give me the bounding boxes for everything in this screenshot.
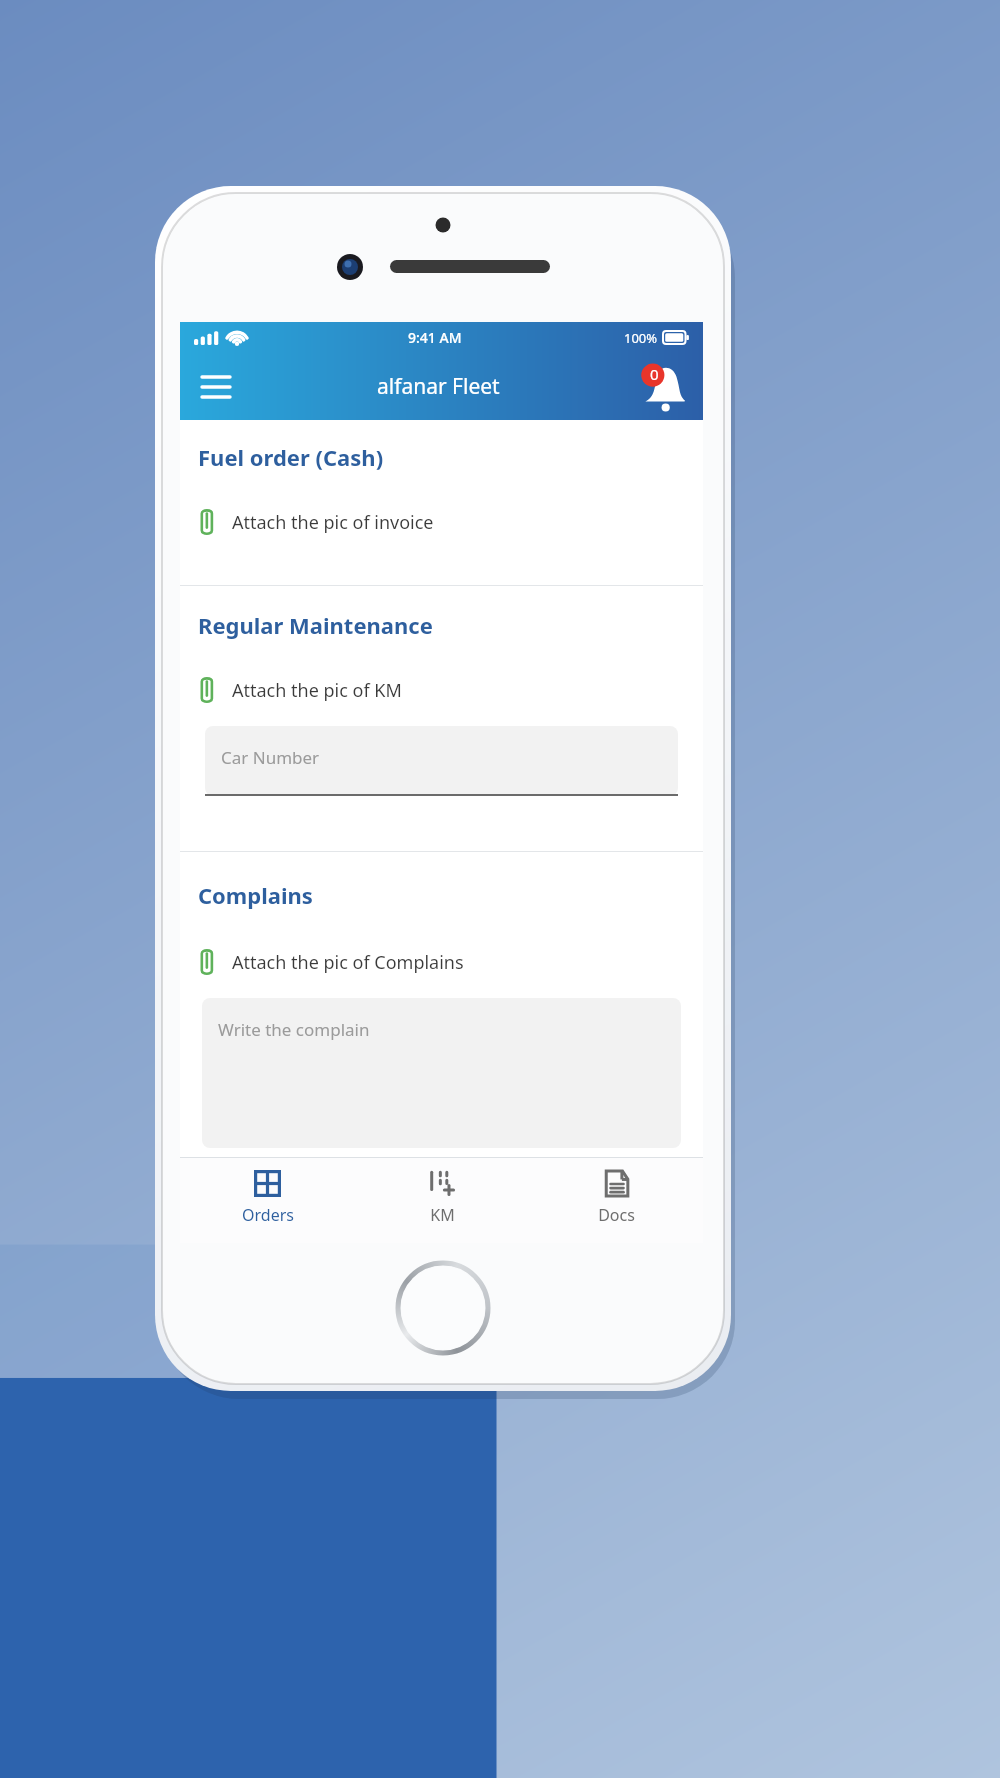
button[interactable]: Orders (180, 1158, 355, 1243)
staticText: Docs (598, 1204, 635, 1226)
staticText: Attach the pic of invoice (232, 510, 434, 535)
staticText: Fuel order (Cash) (198, 442, 384, 472)
staticText: KM (430, 1204, 455, 1226)
staticText: 100% (624, 329, 658, 347)
button[interactable]: Attach the pic of Complains (180, 942, 703, 982)
staticText: Write the complain (218, 1018, 370, 1041)
staticText: Attach the pic of KM (232, 678, 402, 703)
button[interactable]: Docs (529, 1158, 703, 1243)
staticText: alfanar Fleet (377, 372, 500, 401)
staticText: Car Number (221, 746, 320, 769)
button[interactable]: Attach the pic of KM (180, 670, 703, 710)
button[interactable]: KM (355, 1158, 529, 1243)
button[interactable]: Open navigation menu (190, 361, 242, 413)
staticText: 0 (650, 364, 659, 384)
staticText: Orders (242, 1204, 294, 1226)
staticText: Attach the pic of Complains (232, 950, 464, 975)
button[interactable]: Car Number (205, 726, 678, 796)
button[interactable]: Notifications, 0 unread (635, 360, 689, 414)
staticText: Regular Maintenance (198, 610, 433, 640)
staticText: 9:41 AM (408, 328, 462, 347)
button[interactable]: Write the complain (202, 998, 681, 1148)
staticText: Complains (198, 880, 313, 910)
button[interactable]: Attach the pic of invoice (180, 502, 703, 542)
